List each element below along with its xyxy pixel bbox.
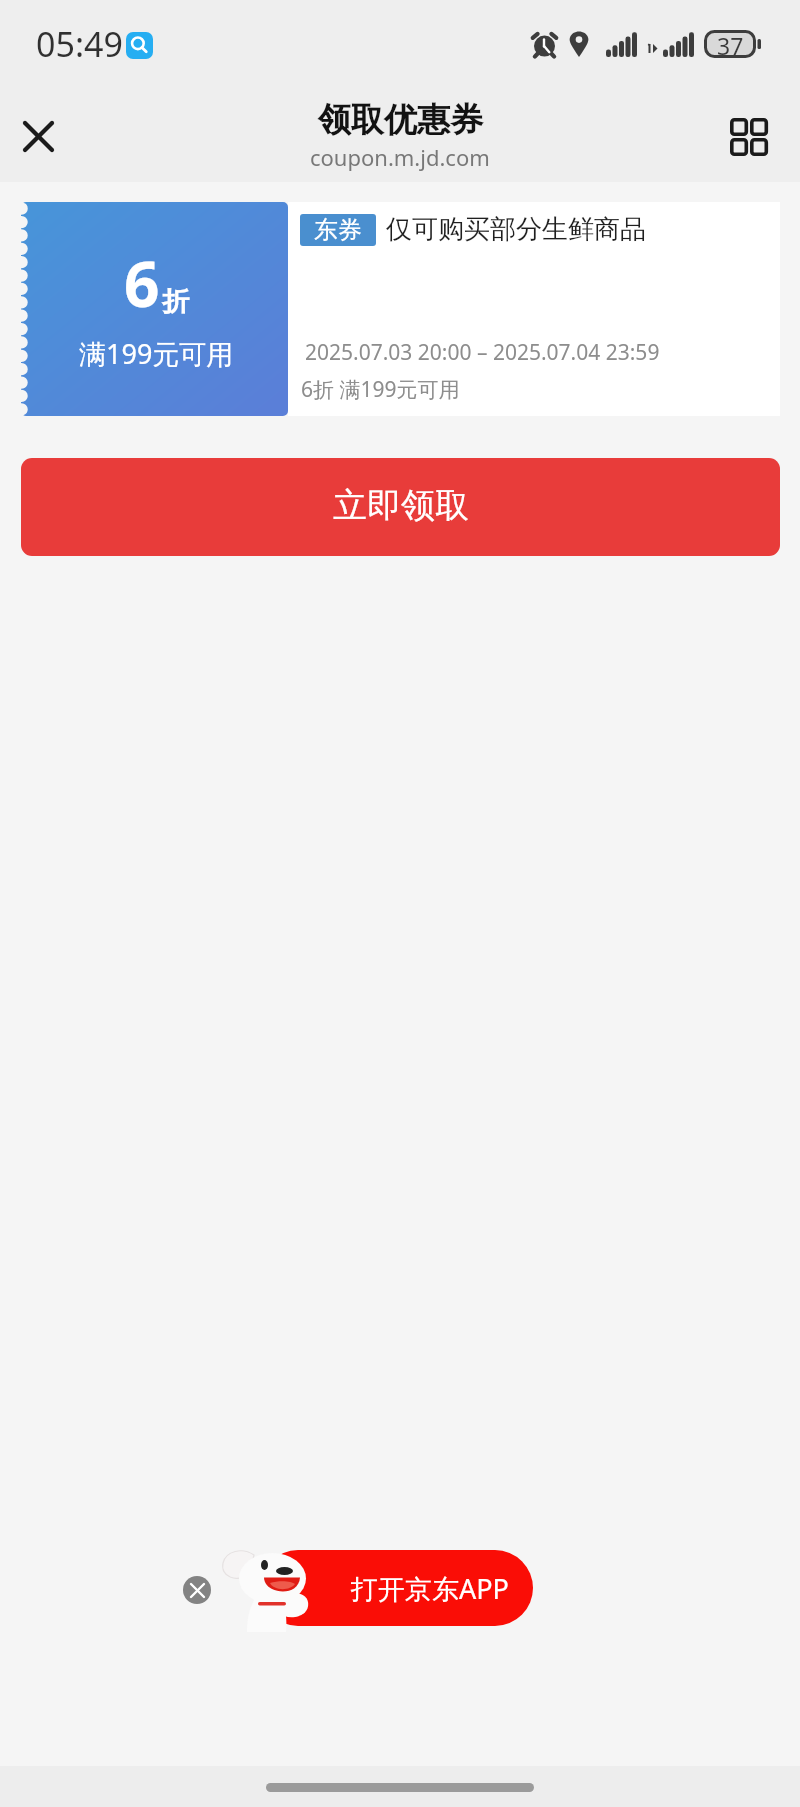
staticText: 37 <box>717 30 744 58</box>
button[interactable]: 6 <box>21 202 780 416</box>
staticText: 领取优惠券 <box>318 99 483 141</box>
button[interactable]: Close banner <box>183 1576 211 1604</box>
staticText: 满199元可用 <box>79 335 234 372</box>
staticText: 东券 <box>314 215 362 245</box>
staticText: 仅可购买部分生鲜商品 <box>386 213 646 246</box>
staticText: 折 <box>162 285 189 319</box>
staticText: 立即领取 <box>333 484 469 527</box>
staticText: 2025.07.03 20:00 – 2025.07.04 23:59 <box>305 338 660 367</box>
staticText: 05:49 <box>36 21 123 67</box>
staticText: 6折 满199元可用 <box>301 375 460 404</box>
button[interactable]: Close <box>12 110 64 162</box>
button[interactable]: 打开京东APP <box>260 1550 533 1626</box>
staticText: 打开京东APP <box>351 1570 509 1607</box>
button[interactable]: Menu <box>722 110 774 162</box>
button[interactable]: 立即领取 <box>21 458 780 556</box>
staticText: coupon.m.jd.com <box>310 142 490 172</box>
staticText: 6 <box>124 241 160 325</box>
